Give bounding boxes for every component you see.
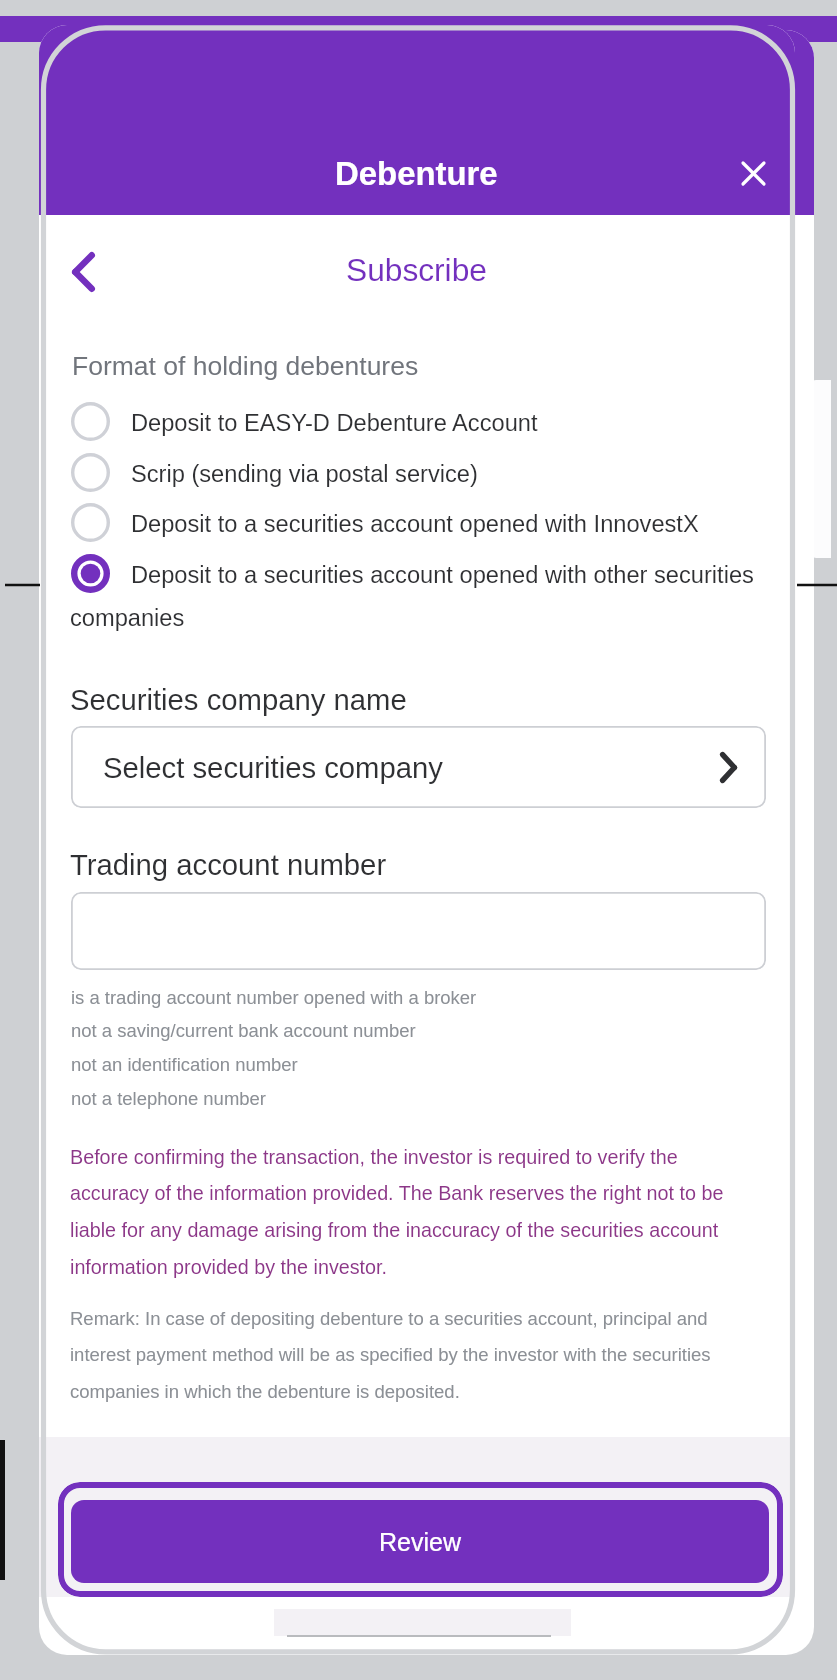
staticText: Select securities company [103, 752, 443, 785]
staticText: companies [70, 605, 185, 631]
staticText: Review [379, 1528, 461, 1556]
button[interactable] [71, 892, 766, 970]
staticText: Scrip (sending via postal service) [131, 461, 478, 487]
staticText: Deposit to EASY-D Debenture Account [131, 410, 538, 436]
button[interactable]: Close [731, 151, 775, 195]
staticText: Trading account number [70, 849, 387, 882]
staticText: Before confirming the transaction, the i… [70, 1146, 742, 1279]
staticText: Deposit to a securities account opened w… [131, 562, 754, 588]
button[interactable]: Back [51, 239, 116, 304]
button[interactable]: Review [58, 1482, 783, 1597]
staticText: Format of holding debentures [72, 351, 419, 381]
staticText: Remark: In case of depositing debenture … [70, 1308, 760, 1402]
staticText: is a trading account number opened with … [71, 987, 477, 1109]
button[interactable]: Select securities company [71, 726, 766, 808]
staticText: Securities company name [70, 684, 407, 717]
staticText: Subscribe [346, 252, 487, 287]
staticText: Debenture [335, 155, 498, 192]
staticText: Deposit to a securities account opened w… [131, 511, 699, 537]
